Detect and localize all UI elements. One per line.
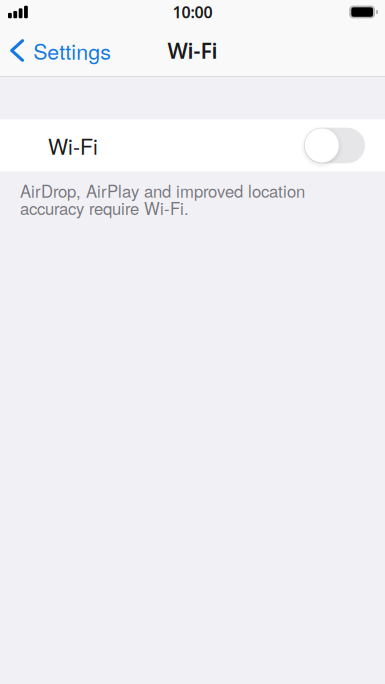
staticText: AirDrop, AirPlay and improved location [20, 178, 305, 202]
staticText: Settings [33, 35, 111, 66]
button[interactable]: Settings [0, 28, 119, 73]
staticText: accuracy require Wi-Fi. [20, 196, 189, 220]
staticText: Wi-Fi [167, 36, 217, 65]
button[interactable]: Wi-Fi [0, 119, 385, 171]
staticText: 10:00 [172, 1, 212, 23]
staticText: Wi-Fi [48, 130, 98, 161]
